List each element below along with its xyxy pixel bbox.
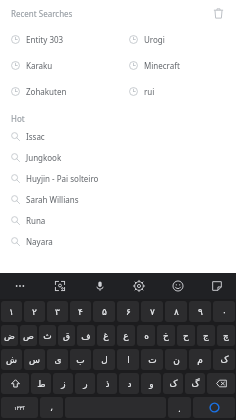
- staticText: ز: [61, 379, 66, 389]
- staticText: ت: [148, 355, 157, 365]
- button[interactable]: ب: [70, 349, 91, 370]
- button[interactable]: Voice input: [80, 273, 119, 299]
- staticText: .: [178, 402, 181, 414]
- button[interactable]: ش: [1, 349, 22, 370]
- button[interactable]: Nayara: [0, 231, 236, 252]
- button[interactable]: ص: [20, 325, 37, 346]
- staticText: Minecraft: [144, 60, 180, 71]
- staticText: ش: [6, 355, 17, 365]
- button[interactable]: ۸: [165, 301, 187, 322]
- button[interactable]: Shift: [1, 373, 29, 394]
- button[interactable]: Zohakuten: [0, 78, 118, 104]
- staticText: ۵: [102, 307, 107, 317]
- staticText: ع: [123, 331, 129, 341]
- button[interactable]: ۴: [70, 301, 91, 322]
- button[interactable]: Emoji: [158, 273, 197, 299]
- button[interactable]: غ: [97, 325, 115, 346]
- button[interactable]: ه: [137, 325, 155, 346]
- staticText: ط: [37, 379, 46, 389]
- staticText: ۹: [198, 307, 203, 317]
- staticText: ۴: [78, 307, 83, 317]
- staticText: ص: [23, 331, 34, 341]
- staticText: Runa: [26, 215, 46, 226]
- staticText: ۶: [126, 307, 131, 317]
- button[interactable]: Issac: [0, 126, 236, 147]
- button[interactable]: ق: [58, 325, 75, 346]
- staticText: ۲: [32, 307, 37, 317]
- button[interactable]: ت: [141, 349, 163, 370]
- staticText: ک: [169, 379, 178, 389]
- button[interactable]: ۰: [213, 301, 235, 322]
- staticText: ج: [203, 331, 209, 341]
- button[interactable]: ک: [163, 373, 183, 394]
- staticText: ک: [220, 355, 229, 365]
- button[interactable]: ؟۱۲۳: [1, 397, 38, 418]
- button[interactable]: ح: [177, 325, 195, 346]
- button[interactable]: ث: [39, 325, 56, 346]
- button[interactable]: ۹: [189, 301, 211, 322]
- staticText: Hot: [11, 113, 25, 124]
- button[interactable]: ک: [213, 349, 235, 370]
- staticText: Karaku: [26, 60, 53, 71]
- staticText: Recent Searches: [11, 8, 73, 19]
- button[interactable]: ف: [77, 325, 95, 346]
- button[interactable]: د: [119, 373, 139, 394]
- button[interactable]: ز: [53, 373, 73, 394]
- staticText: ف: [81, 331, 91, 341]
- staticText: ۰: [222, 307, 227, 317]
- button[interactable]: ی: [47, 349, 68, 370]
- button[interactable]: Jungkook: [0, 147, 236, 168]
- button[interactable]: Search: [193, 397, 235, 418]
- button[interactable]: Entity 303: [0, 26, 118, 52]
- button[interactable]: Minecraft: [118, 52, 236, 78]
- button[interactable]: خ: [157, 325, 175, 346]
- button[interactable]: Karaku: [0, 52, 118, 78]
- button[interactable]: ط: [31, 373, 51, 394]
- button[interactable]: Backspace: [207, 373, 235, 394]
- button[interactable]: ۵: [93, 301, 115, 322]
- button[interactable]: ۱: [1, 301, 22, 322]
- button[interactable]: ع: [117, 325, 135, 346]
- button[interactable]: ذ: [97, 373, 117, 394]
- staticText: ل: [101, 355, 108, 365]
- button[interactable]: س: [24, 349, 45, 370]
- button[interactable]: ا: [117, 349, 139, 370]
- staticText: ض: [4, 331, 15, 341]
- staticText: Huyjin - Pai solteiro: [26, 173, 99, 184]
- button[interactable]: م: [189, 349, 211, 370]
- button[interactable]: More options: [0, 273, 40, 299]
- staticText: Nayara: [26, 236, 53, 247]
- button[interactable]: Runa: [0, 210, 236, 231]
- staticText: م: [197, 355, 203, 365]
- button[interactable]: گ: [185, 373, 205, 394]
- button[interactable]: و: [141, 373, 161, 394]
- staticText: گ: [191, 379, 200, 389]
- button[interactable]: Google Lens: [40, 273, 80, 299]
- button[interactable]: ،: [40, 397, 63, 418]
- button[interactable]: چ: [217, 325, 235, 346]
- staticText: غ: [103, 331, 109, 341]
- button[interactable]: Clear recent searches: [209, 4, 227, 22]
- button[interactable]: ض: [1, 325, 18, 346]
- button[interactable]: ل: [93, 349, 115, 370]
- staticText: ا: [127, 355, 130, 365]
- staticText: Issac: [26, 131, 45, 142]
- button[interactable]: .: [168, 397, 191, 418]
- button[interactable]: rui: [118, 78, 236, 104]
- button[interactable]: Settings: [119, 273, 158, 299]
- button[interactable]: ر: [75, 373, 95, 394]
- button[interactable]: ج: [197, 325, 215, 346]
- button[interactable]: ۳: [47, 301, 68, 322]
- button[interactable]: Huyjin - Pai solteiro: [0, 168, 236, 189]
- button[interactable]: Sarah Willians: [0, 189, 236, 210]
- button[interactable]: ۷: [141, 301, 163, 322]
- button[interactable]: Stickers: [197, 273, 236, 299]
- button[interactable]: ۶: [117, 301, 139, 322]
- staticText: ح: [183, 331, 189, 341]
- button[interactable]: ۲: [24, 301, 45, 322]
- button[interactable]: ن: [165, 349, 187, 370]
- button[interactable]: Urogi: [118, 26, 236, 52]
- staticText: ه: [144, 331, 149, 341]
- staticText: و: [149, 379, 154, 389]
